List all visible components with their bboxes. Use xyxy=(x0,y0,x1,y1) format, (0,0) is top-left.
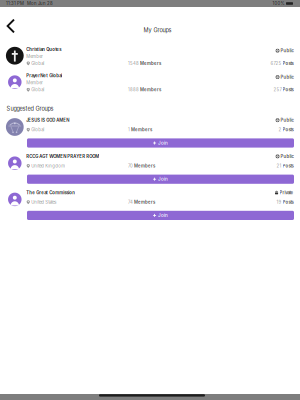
staticText: Suggested Groups xyxy=(7,105,54,112)
staticText: Join xyxy=(158,140,168,146)
staticText: United States xyxy=(31,200,56,205)
staticText: Global xyxy=(31,127,44,132)
staticText: PrayerNet Global xyxy=(26,73,62,78)
staticText: My Groups xyxy=(143,27,171,34)
staticText: 21 xyxy=(277,163,282,169)
staticText: 1888 xyxy=(128,87,139,92)
staticText: 19 xyxy=(277,200,282,205)
staticText: 100% xyxy=(272,1,284,6)
staticText: Global xyxy=(31,87,44,92)
staticText: Posts xyxy=(282,61,293,66)
staticText: Posts xyxy=(282,127,293,132)
staticText: United Kingdom xyxy=(31,163,65,169)
staticText: Member xyxy=(26,54,43,59)
staticText: Global xyxy=(31,61,44,66)
staticText: 6725 xyxy=(271,61,282,66)
staticText: RCCG AGT WOMEN PRAYER ROOM xyxy=(26,154,99,159)
button[interactable]: PrayerNet Global xyxy=(0,72,300,98)
staticText: Private xyxy=(279,190,293,195)
staticText: Members xyxy=(140,87,161,92)
staticText: 2 xyxy=(279,127,282,132)
staticText: JESUS IS GOD AMEN xyxy=(26,118,69,123)
staticText: Join xyxy=(158,213,168,218)
staticText: 1548 xyxy=(128,61,139,66)
staticText: 70 xyxy=(128,163,133,169)
staticText: Join xyxy=(158,176,168,182)
staticText: 11:31 PM Mon Jun 28 xyxy=(6,1,53,6)
button[interactable]: Back xyxy=(0,18,23,34)
button[interactable]: Join xyxy=(27,175,294,184)
staticText: Member xyxy=(26,80,43,85)
staticText: Public xyxy=(280,74,293,80)
staticText: Public xyxy=(280,48,293,53)
staticText: Posts xyxy=(282,163,293,169)
staticText: Posts xyxy=(282,87,293,92)
staticText: Members xyxy=(134,200,155,205)
staticText: 1 xyxy=(128,127,130,132)
staticText: Public xyxy=(280,154,293,159)
staticText: Members xyxy=(140,61,161,66)
staticText: Posts xyxy=(282,200,293,205)
staticText: 74 xyxy=(128,200,133,205)
button[interactable]: Join xyxy=(27,211,294,220)
staticText: 257 xyxy=(274,87,282,92)
staticText: Public xyxy=(280,118,293,123)
staticText: Christian Quotes xyxy=(26,47,61,52)
button[interactable]: Join xyxy=(27,138,294,148)
staticText: Members xyxy=(134,163,155,169)
staticText: Members xyxy=(131,127,152,132)
button[interactable]: Christian Quotes xyxy=(0,45,300,72)
staticText: The Great Commission xyxy=(26,190,75,195)
